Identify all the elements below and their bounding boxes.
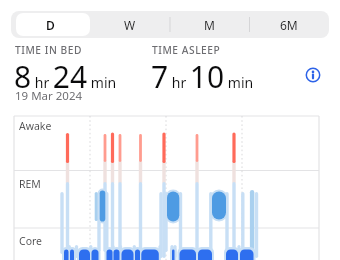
button[interactable]: 6M	[249, 11, 329, 38]
staticText: 6M	[280, 17, 298, 33]
button[interactable]: M	[169, 11, 249, 38]
staticText: TIME IN BED	[15, 43, 83, 57]
staticText: D	[46, 17, 55, 33]
staticText: REM	[19, 177, 41, 191]
button[interactable]	[305, 67, 321, 83]
staticText: Awake	[19, 119, 52, 133]
button[interactable]: D	[11, 11, 90, 38]
staticText: W	[124, 17, 136, 33]
staticText: 8 hr 24 min	[14, 56, 117, 97]
staticText: 19 Mar 2024	[15, 88, 83, 104]
button[interactable]	[13, 11, 92, 38]
staticText: TIME ASLEEP	[152, 43, 221, 57]
staticText: M	[204, 17, 215, 33]
button[interactable]: W	[90, 11, 169, 38]
staticText: 7 hr 10 min	[151, 56, 254, 97]
staticText: Core	[19, 234, 43, 248]
